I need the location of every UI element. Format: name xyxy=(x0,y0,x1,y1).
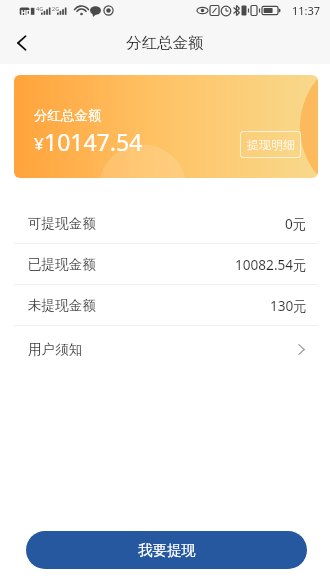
button[interactable]: 用户须知 xyxy=(14,326,318,369)
staticText: 已提现金额 xyxy=(28,256,96,273)
staticText: 10082.54元 xyxy=(235,255,307,274)
staticText: 0元 xyxy=(285,214,307,233)
staticText: 未提现金额 xyxy=(28,297,96,314)
staticText: HD xyxy=(21,8,31,17)
staticText: 130元 xyxy=(270,296,307,315)
staticText: 4G xyxy=(36,5,44,12)
button[interactable]: Back xyxy=(0,21,44,64)
staticText: 提现明细 xyxy=(247,137,295,152)
button[interactable]: 我要提现 xyxy=(26,531,307,569)
button[interactable]: 未提现金额 xyxy=(14,285,318,325)
staticText: 分红总金额 xyxy=(34,107,102,124)
button[interactable]: 已提现金额 xyxy=(14,244,318,284)
staticText: 我要提现 xyxy=(138,541,196,559)
button[interactable]: 可提现金额 xyxy=(14,203,318,243)
staticText: 10147.54 xyxy=(44,126,143,157)
staticText: 分红总金额 xyxy=(126,33,204,53)
button[interactable]: 提现明细 xyxy=(240,131,301,158)
staticText: ¥ xyxy=(34,132,44,155)
staticText: 2G xyxy=(52,5,60,12)
staticText: 用户须知 xyxy=(28,341,83,358)
staticText: 11:37 xyxy=(292,3,321,18)
staticText: 可提现金额 xyxy=(28,215,96,232)
